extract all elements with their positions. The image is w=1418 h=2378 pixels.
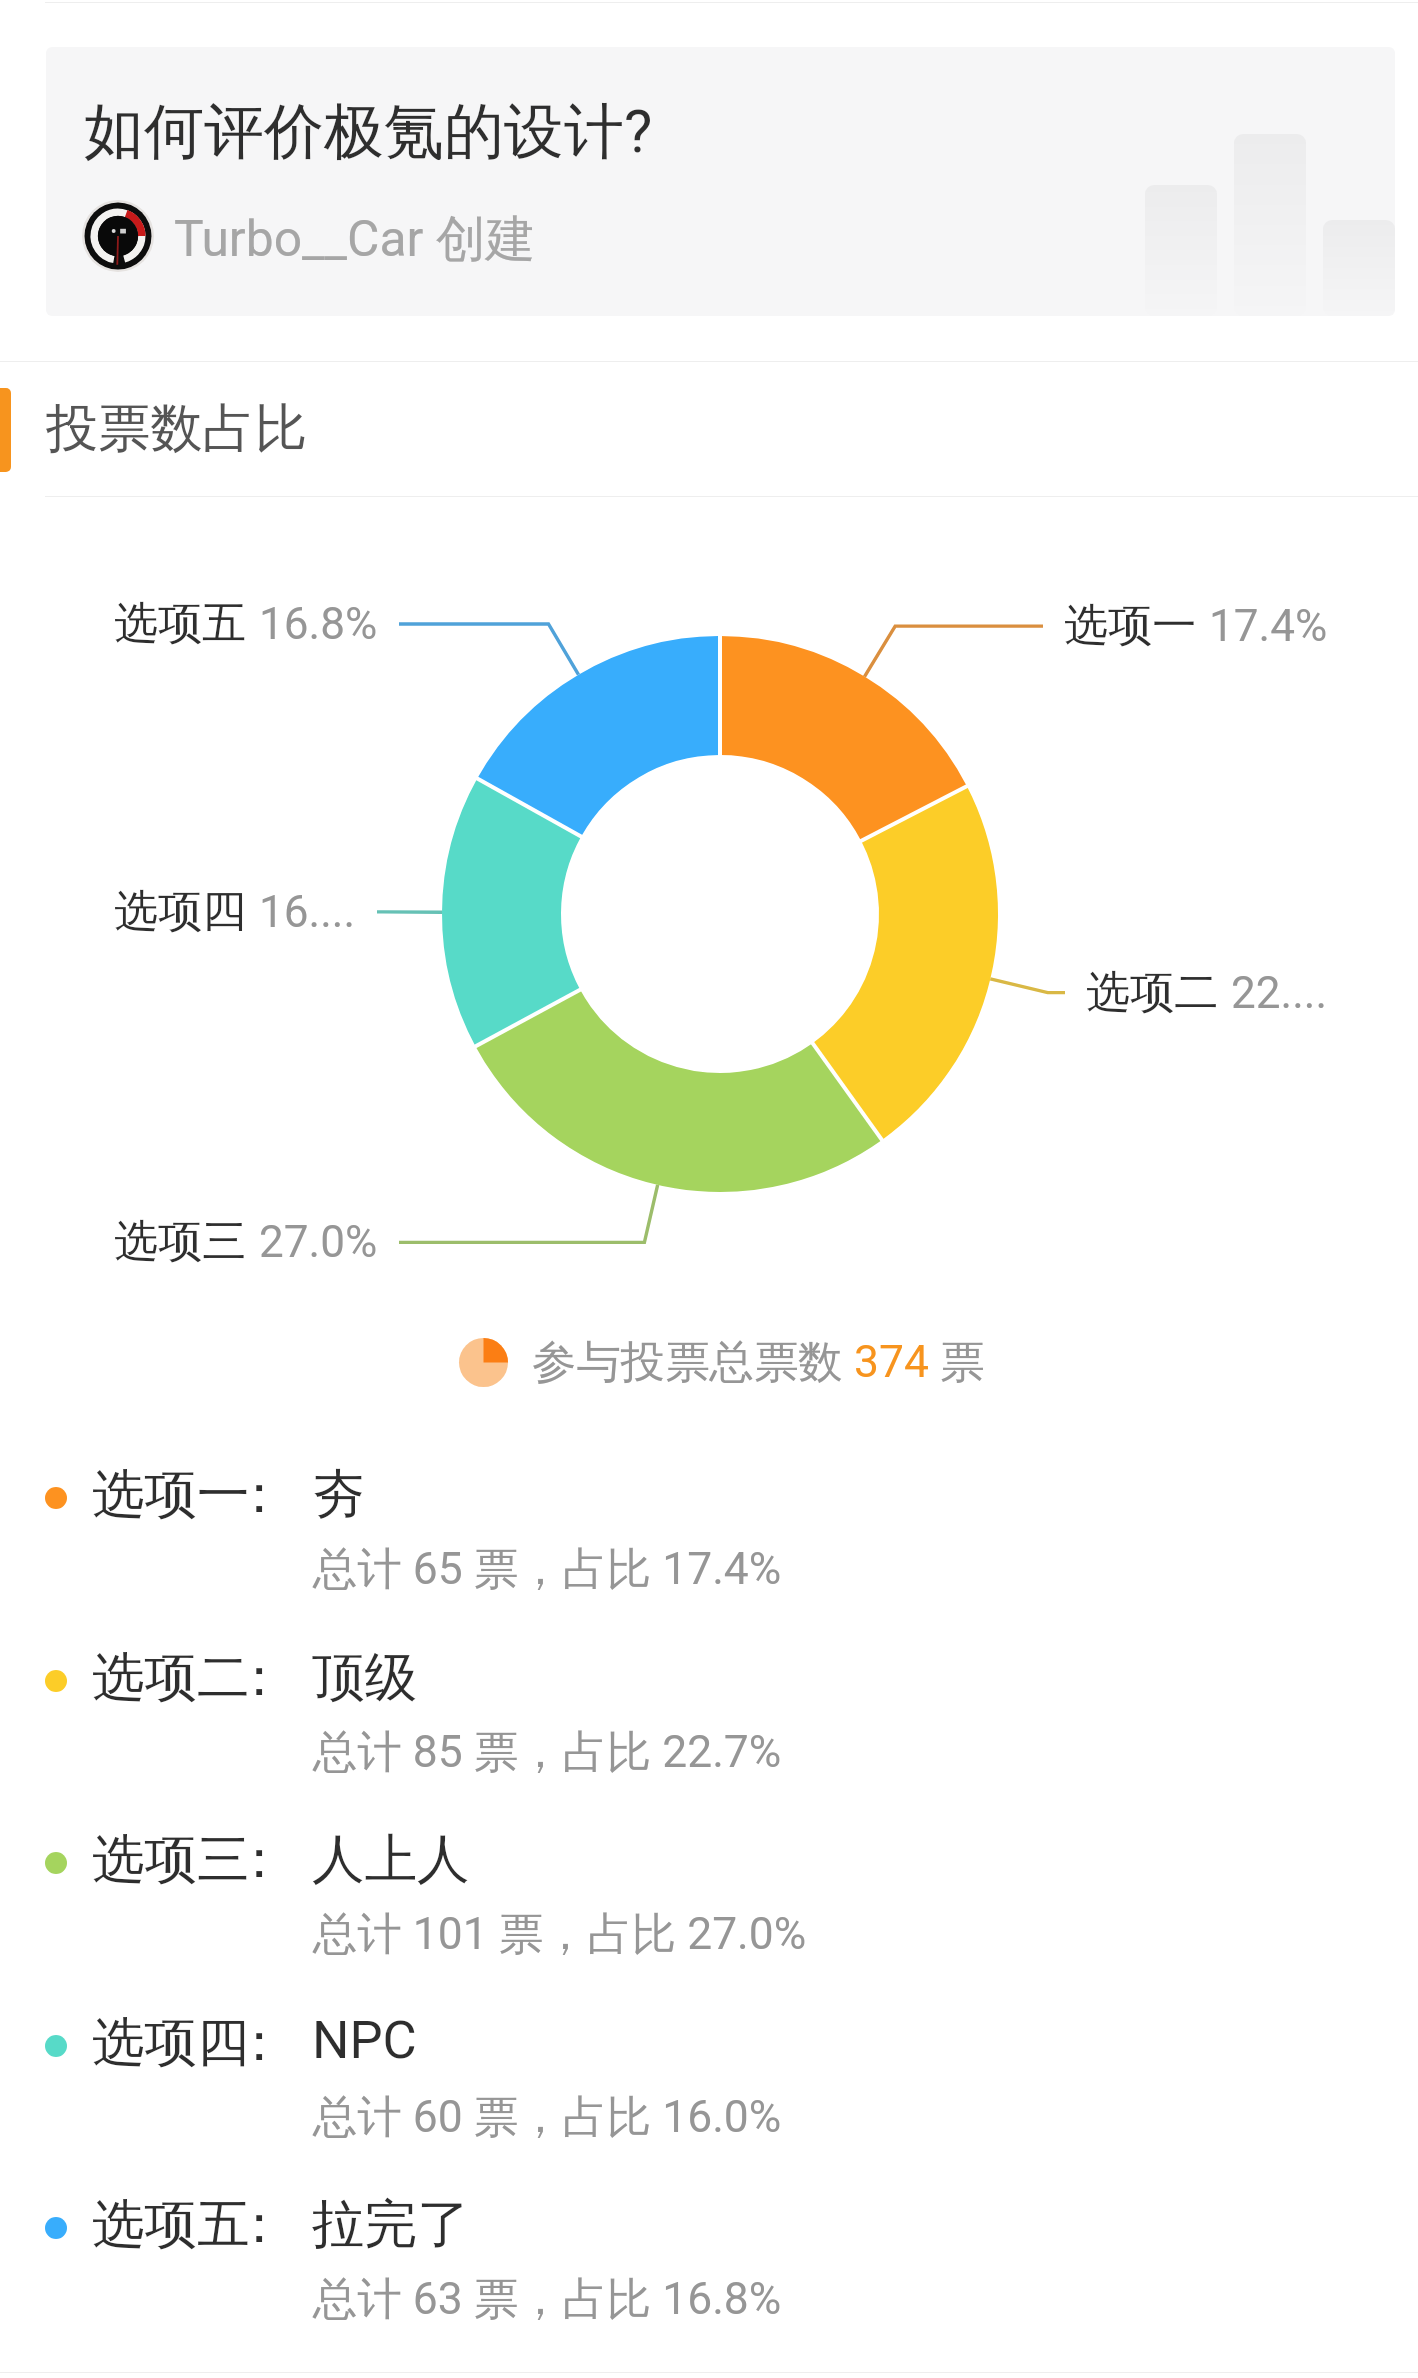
button[interactable]: 选项一: [0, 1461, 1418, 1611]
staticText: ：: [233, 1826, 286, 1892]
staticText: ：: [233, 1461, 286, 1527]
staticText: 总计 65 票，占比 17.4%: [313, 1541, 782, 1597]
staticText: 顶级: [312, 1644, 417, 1710]
staticText: Turbo__Car 创建: [174, 208, 536, 271]
button[interactable]: 选项四: [0, 2009, 1418, 2159]
staticText: 总计 60 票，占比 16.0%: [313, 2089, 782, 2145]
staticText: ：: [233, 1644, 286, 1710]
button[interactable]: 选项三: [0, 1826, 1418, 1976]
staticText: 选项三: [92, 1826, 250, 1892]
staticText: NPC: [312, 2009, 417, 2071]
staticText: 人上人: [312, 1826, 470, 1892]
staticText: 总计 101 票，占比 27.0%: [313, 1906, 807, 1962]
staticText: 选项四: [92, 2009, 250, 2075]
staticText: 选项五: [92, 2191, 250, 2257]
staticText: 夯: [312, 1461, 365, 1527]
staticText: 投票数占比: [46, 396, 307, 462]
staticText: 票: [929, 1334, 985, 1390]
staticText: 总计 63 票，占比 16.8%: [313, 2271, 782, 2327]
staticText: ：: [233, 2009, 286, 2075]
staticText: 选项二: [92, 1644, 250, 1710]
staticText: 参与投票总票数: [532, 1334, 854, 1390]
staticText: 总计 85 票，占比 22.7%: [313, 1724, 782, 1780]
staticText: 374: [854, 1336, 929, 1388]
staticText: 如何评价极氪的设计?: [84, 94, 653, 170]
staticText: 选项一: [92, 1461, 250, 1527]
staticText: 拉完了: [312, 2191, 470, 2257]
other: Author avatar: [82, 200, 154, 272]
button[interactable]: 选项二: [0, 1644, 1418, 1794]
button[interactable]: 选项五: [0, 2191, 1418, 2341]
button[interactable]: 如何评价极氪的设计?: [46, 47, 1395, 316]
staticText: ：: [233, 2191, 286, 2257]
